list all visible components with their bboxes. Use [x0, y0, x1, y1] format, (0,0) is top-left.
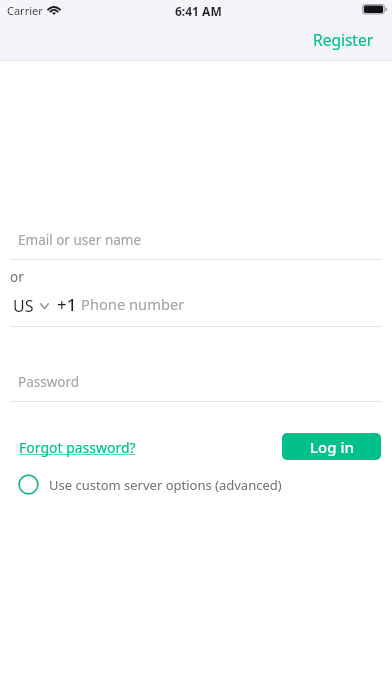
button[interactable]: Log in — [282, 433, 381, 460]
staticText: Carrier — [7, 3, 43, 18]
staticText: or — [10, 268, 24, 286]
staticText: Email or user name — [18, 231, 142, 249]
button[interactable]: Forgot password? — [19, 438, 136, 457]
button[interactable]: Email or user name — [0, 228, 392, 260]
staticText: Use custom server options (advanced) — [49, 476, 282, 494]
other: Wi-Fi signal — [47, 3, 61, 13]
staticText: 6:41 AM — [175, 3, 222, 19]
button[interactable]: Use custom server options (advanced) — [0, 470, 392, 499]
button[interactable]: US — [13, 290, 49, 322]
staticText: +1 — [57, 293, 77, 316]
staticText: Register — [313, 29, 374, 50]
staticText: Phone number — [81, 294, 185, 314]
staticText: Forgot password? — [19, 438, 136, 457]
other: Battery full — [362, 4, 387, 15]
staticText: US — [13, 295, 34, 317]
button[interactable]: Register — [313, 29, 374, 50]
button[interactable]: Password — [0, 370, 392, 401]
staticText: Log in — [310, 437, 354, 457]
staticText: Password — [18, 373, 80, 391]
button[interactable]: Phone number — [81, 293, 392, 325]
